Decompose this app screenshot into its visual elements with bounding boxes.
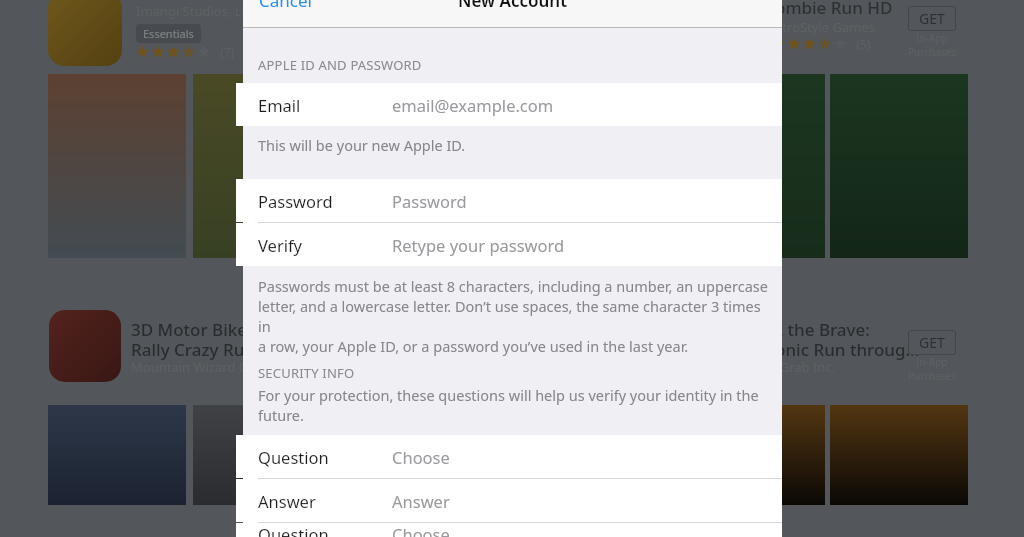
button[interactable]: Answer — [243, 479, 782, 522]
staticText: Verify — [258, 234, 392, 256]
staticText: GET — [919, 9, 945, 28]
staticText: Answer — [392, 490, 450, 512]
staticText: Password — [258, 190, 392, 212]
staticText: APPLE ID AND PASSWORD — [258, 56, 422, 74]
button[interactable]: Question — [243, 435, 782, 478]
staticText: SECURITY INFO — [258, 364, 355, 382]
button[interactable]: Email — [243, 83, 782, 126]
button[interactable]: GET — [908, 330, 956, 383]
button[interactable]: Cancel — [259, 0, 312, 12]
staticText: In-App — [916, 355, 948, 369]
staticText: Purchases — [908, 45, 956, 59]
staticText: future. — [258, 405, 304, 425]
staticText: Answer — [258, 490, 392, 512]
button[interactable]: Question — [243, 523, 782, 537]
button[interactable]: Verify — [243, 223, 782, 266]
button[interactable]: Password — [243, 179, 782, 222]
staticText: tGrab Inc. — [775, 358, 836, 376]
staticText: 3D Motor Bike — [131, 318, 248, 341]
staticText: letter, and a lowercase letter. Don’t us… — [258, 296, 770, 336]
staticText: Question — [258, 523, 392, 537]
staticText: GET — [919, 333, 945, 352]
staticText: New Account — [243, 0, 782, 12]
staticText: ombie Run HD — [775, 0, 893, 19]
staticText: Passwords must be at least 8 characters,… — [258, 276, 768, 296]
staticText: For your protection, these questions wil… — [258, 385, 759, 405]
staticText: In-App — [916, 31, 948, 45]
staticText: etroStyle Games — [775, 18, 875, 36]
staticText: email@example.com — [392, 94, 554, 116]
button[interactable]: GET — [908, 6, 956, 59]
staticText: onic Run throug… — [775, 338, 920, 361]
staticText: Mountain Wizard Ga — [131, 358, 256, 376]
staticText: Email — [258, 94, 392, 116]
staticText: Imangi Studios, LLC — [136, 2, 257, 20]
staticText: Question — [258, 446, 392, 468]
staticText: z the Brave: — [775, 318, 870, 341]
staticText: This will be your new Apple ID. — [258, 135, 466, 155]
staticText: Choose — [392, 523, 450, 537]
staticText: Retype your password — [392, 234, 565, 256]
staticText: Choose — [392, 446, 450, 468]
staticText: Password — [392, 190, 467, 212]
staticText: Purchases — [908, 369, 956, 383]
staticText: a row, your Apple ID, or a password you’… — [258, 336, 689, 356]
staticText: Rally Crazy Run:… — [131, 338, 274, 361]
staticText: Essentials — [143, 26, 194, 41]
